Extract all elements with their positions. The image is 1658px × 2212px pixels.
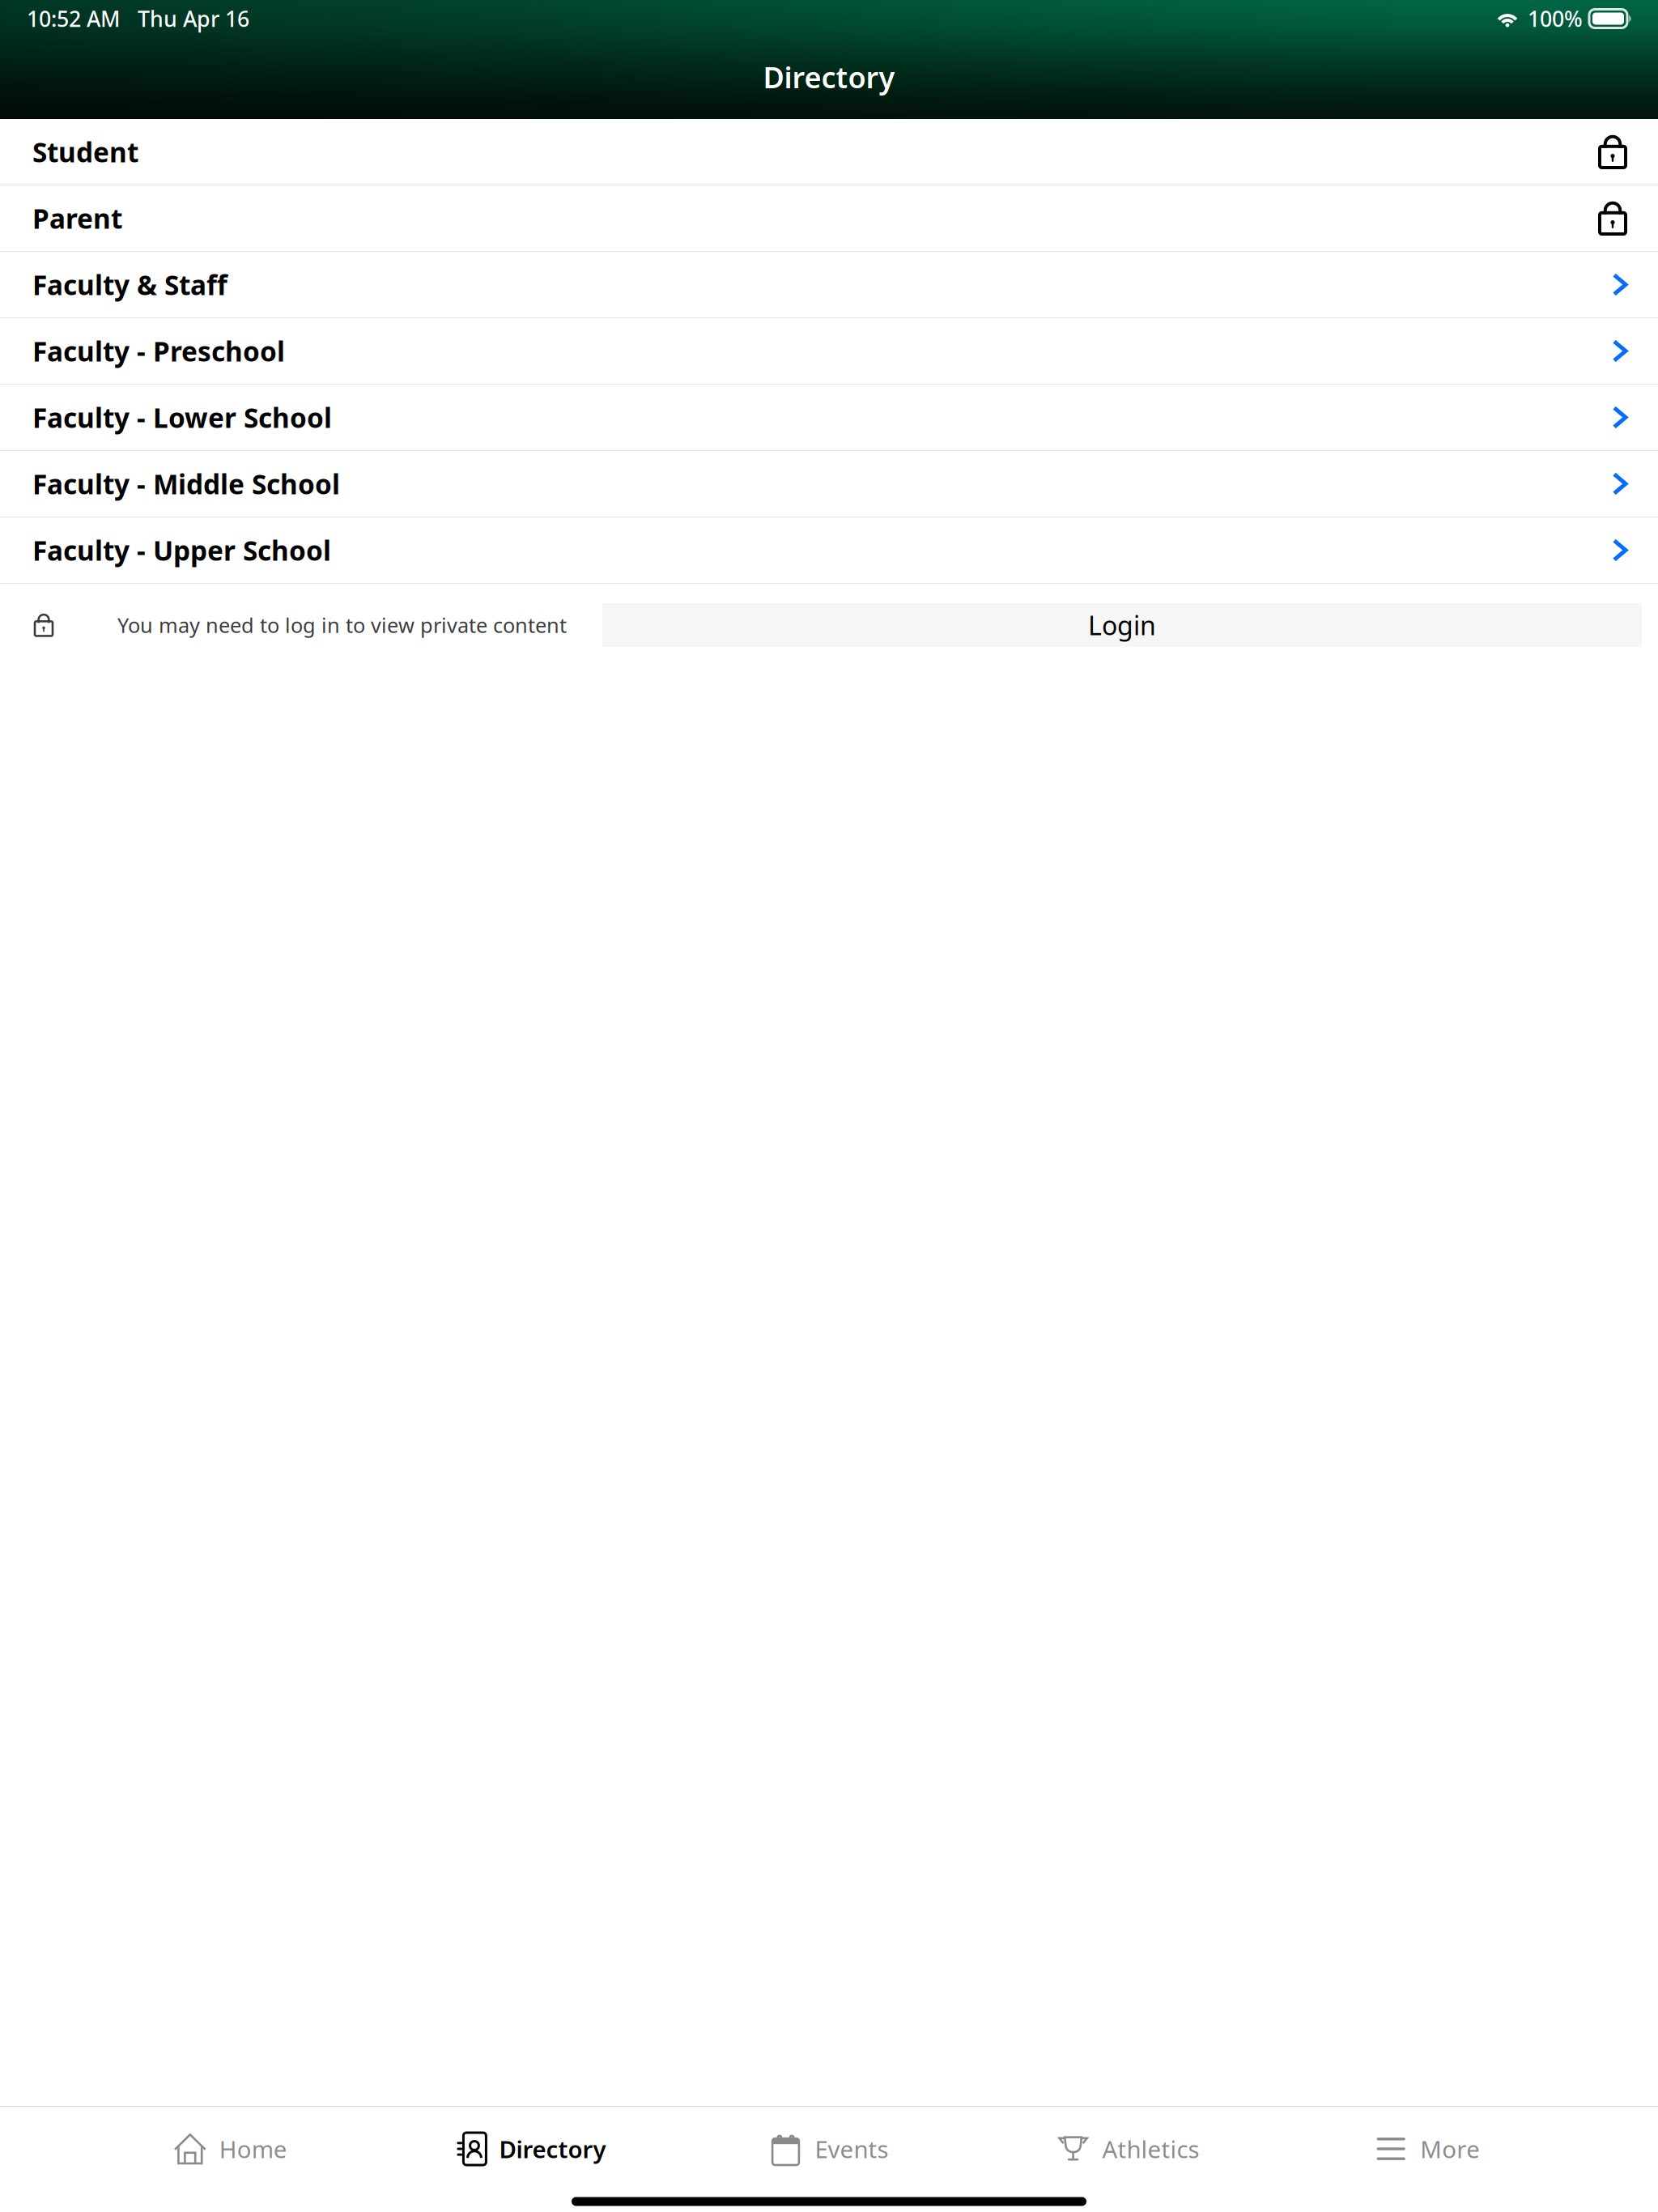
- button[interactable]: More: [1278, 2107, 1577, 2191]
- staticText: Athletics: [1102, 2133, 1199, 2165]
- button[interactable]: Faculty & Staff: [0, 252, 1658, 318]
- button[interactable]: Student: [0, 119, 1658, 185]
- staticText: Faculty - Middle School: [32, 466, 340, 502]
- button[interactable]: Events: [679, 2107, 979, 2191]
- button[interactable]: Faculty - Preschool: [0, 318, 1658, 385]
- button[interactable]: Faculty - Lower School: [0, 385, 1658, 451]
- staticText: Login: [1088, 608, 1156, 642]
- staticText: Faculty - Upper School: [32, 532, 331, 568]
- staticText: 10:52 AM: [27, 4, 120, 33]
- staticText: Thu Apr 16: [138, 4, 249, 33]
- staticText: You may need to log in to view private c…: [117, 611, 567, 639]
- staticText: Faculty & Staff: [32, 267, 227, 303]
- button[interactable]: Parent: [0, 185, 1658, 252]
- staticText: Faculty - Preschool: [32, 333, 285, 369]
- button[interactable]: Home: [81, 2107, 380, 2191]
- button[interactable]: Faculty - Middle School: [0, 451, 1658, 517]
- staticText: Directory: [763, 58, 895, 96]
- staticText: 100%: [1528, 4, 1583, 33]
- button[interactable]: Athletics: [979, 2107, 1278, 2191]
- button[interactable]: Faculty - Upper School: [0, 517, 1658, 584]
- staticText: Student: [32, 134, 138, 170]
- staticText: Home: [219, 2133, 287, 2165]
- staticText: Events: [815, 2133, 889, 2165]
- button[interactable]: Login: [602, 603, 1642, 647]
- staticText: More: [1420, 2133, 1480, 2165]
- staticText: Directory: [499, 2133, 606, 2165]
- staticText: Parent: [32, 200, 122, 236]
- button[interactable]: Directory: [380, 2107, 679, 2191]
- staticText: Faculty - Lower School: [32, 399, 332, 435]
